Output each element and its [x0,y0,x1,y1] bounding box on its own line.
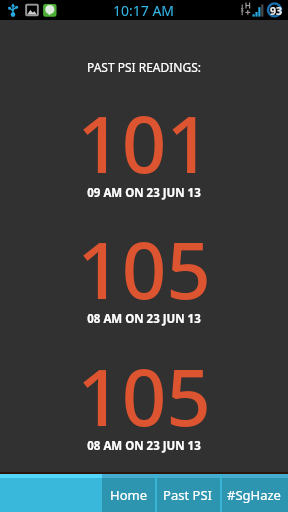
staticText: Past PSI [163,486,212,504]
other: Notifications [0,0,60,20]
staticText: 93 [270,4,283,18]
staticText: #SgHaze [227,486,281,504]
other: Signal and battery status [236,0,288,20]
staticText: PAST PSI READINGS: [0,59,288,75]
staticText: 10:17 AM [113,1,175,20]
button[interactable]: App title [0,474,102,512]
button[interactable]: #SgHaze [220,474,288,512]
button[interactable]: 105 [0,329,288,449]
staticText: Home [110,486,147,504]
staticText: 101 [0,90,288,196]
button[interactable]: Home [102,474,155,512]
button[interactable]: 105 [0,202,288,322]
staticText: 09 AM ON 23 JUN 13 [0,185,288,201]
staticText: 08 AM ON 23 JUN 13 [0,311,288,327]
staticText: 105 [0,343,288,449]
staticText: 08 AM ON 23 JUN 13 [0,438,288,454]
button[interactable]: Past PSI [155,474,220,512]
button[interactable]: 101 [0,76,288,196]
staticText: 105 [0,216,288,322]
